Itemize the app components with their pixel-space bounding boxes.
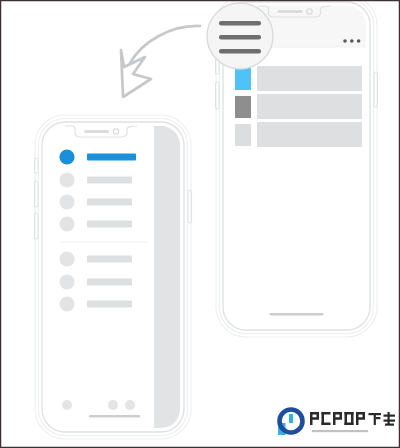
button[interactable]: More options	[338, 34, 364, 52]
button[interactable]: Selected drawer item	[56, 146, 156, 170]
button[interactable]: Open navigation menu	[207, 3, 273, 69]
